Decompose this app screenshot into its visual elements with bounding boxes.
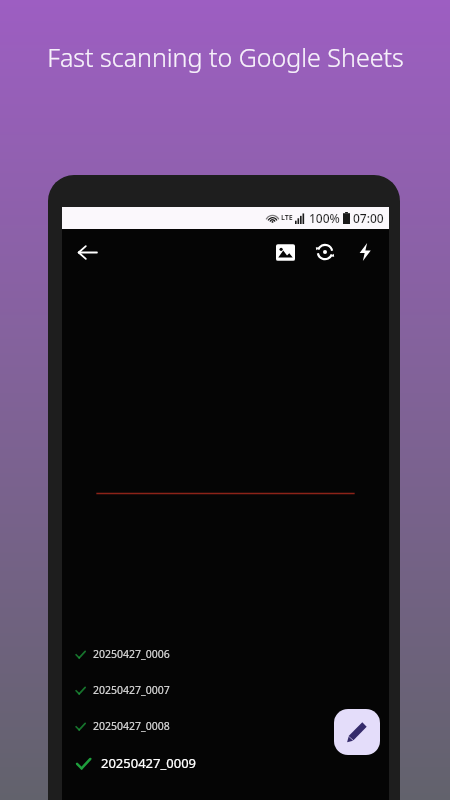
button[interactable]: Edit bbox=[334, 709, 380, 755]
button[interactable]: Back bbox=[66, 231, 108, 273]
button[interactable]: 20250427_0008 bbox=[62, 717, 389, 735]
staticText: LTE bbox=[281, 213, 293, 223]
button[interactable]: Gallery bbox=[265, 232, 305, 272]
button[interactable]: Flash bbox=[345, 232, 385, 272]
staticText: 100% bbox=[309, 210, 340, 226]
button[interactable]: Switch camera bbox=[305, 232, 345, 272]
staticText: Fast scanning to Google Sheets bbox=[47, 40, 404, 74]
button[interactable]: 20250427_0009 bbox=[62, 751, 389, 775]
staticText: 20250427_0006 bbox=[93, 647, 170, 661]
staticText: 20250427_0007 bbox=[93, 683, 170, 697]
button[interactable]: 20250427_0006 bbox=[62, 645, 389, 663]
staticText: 20250427_0008 bbox=[93, 719, 170, 733]
button[interactable]: 20250427_0007 bbox=[62, 681, 389, 699]
staticText: 20250427_0009 bbox=[101, 754, 197, 772]
staticText: 07:00 bbox=[353, 210, 384, 226]
